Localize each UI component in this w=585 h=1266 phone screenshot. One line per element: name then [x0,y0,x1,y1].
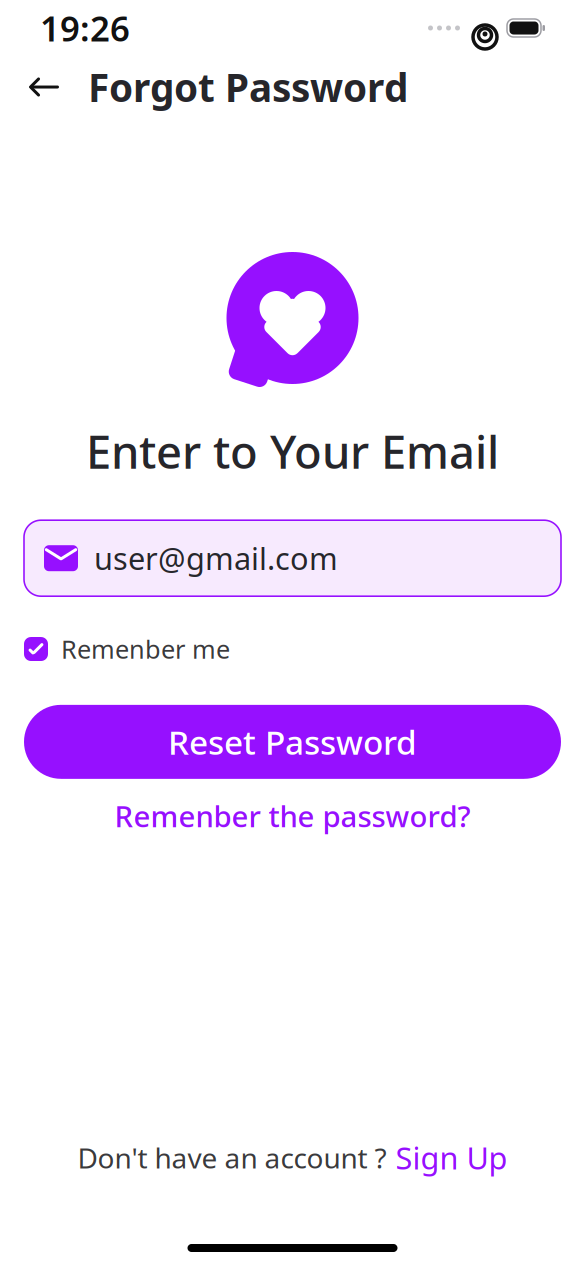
button[interactable]: user@gmail.com [24,520,561,596]
staticText: Enter to Your Email [86,421,499,481]
staticText: user@gmail.com [94,538,338,578]
staticText: Forgot Password [88,61,408,113]
button[interactable]: Sign Up [395,1137,507,1178]
button[interactable]: Back [22,65,66,109]
staticText: Remenber the password? [114,796,470,835]
staticText: Sign Up [395,1137,507,1178]
staticText: Remenber me [61,632,230,666]
staticText: 19:26 [40,5,130,51]
button[interactable]: Remenber the password? [24,799,561,833]
staticText: Reset Password [168,720,417,764]
staticText: Don't have an account ? [77,1139,386,1176]
button[interactable]: Reset Password [24,705,561,779]
button[interactable]: Remenber me [24,632,561,666]
